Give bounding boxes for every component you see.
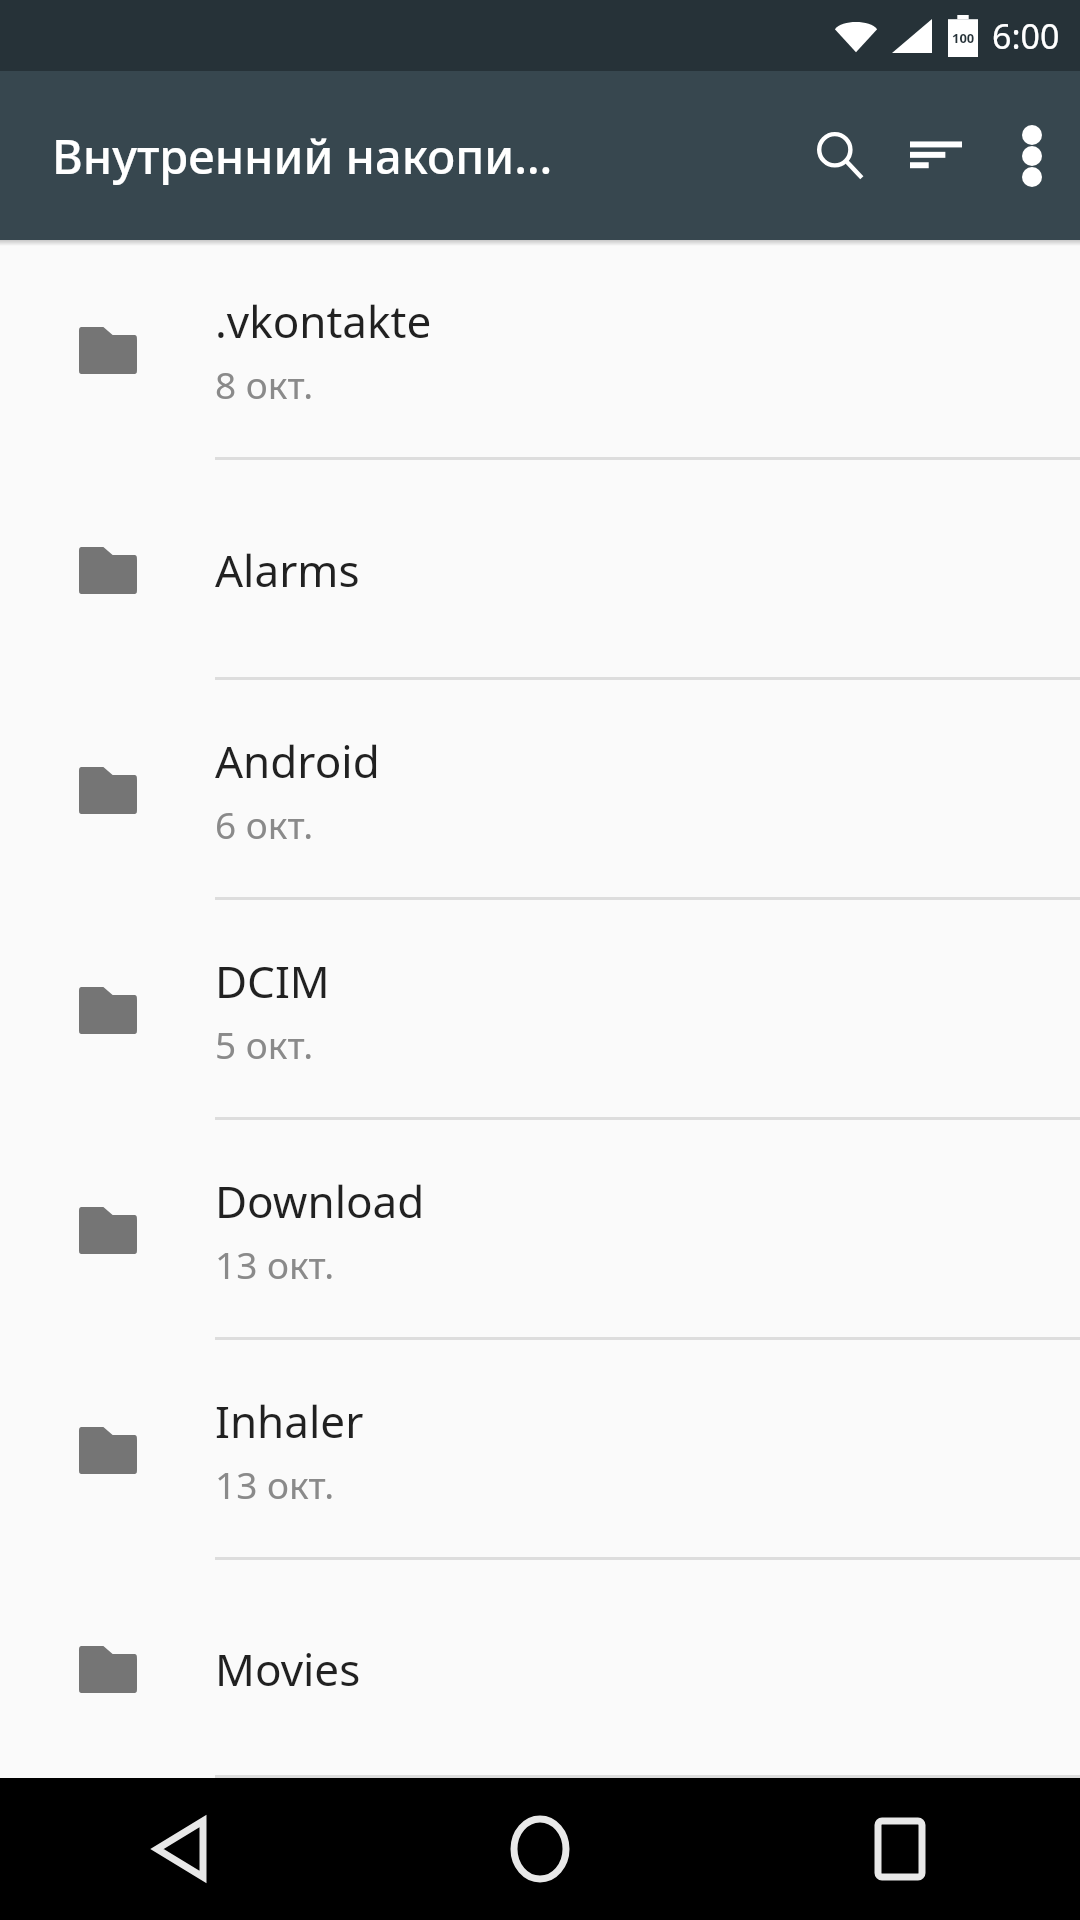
button[interactable]: Download bbox=[0, 1120, 1080, 1340]
staticText: 5 окт. bbox=[215, 1019, 314, 1069]
button[interactable]: Back bbox=[0, 1778, 360, 1920]
staticText: 13 окт. bbox=[215, 1239, 335, 1289]
button[interactable]: Sort bbox=[888, 108, 984, 204]
staticText: DCIM bbox=[215, 951, 330, 1011]
staticText: Inhaler bbox=[215, 1391, 364, 1451]
staticText: Movies bbox=[215, 1639, 361, 1699]
staticText: Download bbox=[215, 1171, 425, 1231]
staticText: 100 bbox=[952, 29, 975, 47]
button[interactable]: Movies bbox=[0, 1560, 1080, 1778]
staticText: Android bbox=[215, 731, 380, 791]
staticText: 13 окт. bbox=[215, 1459, 335, 1509]
staticText: 6 окт. bbox=[215, 799, 314, 849]
button[interactable]: More options bbox=[984, 108, 1080, 204]
staticText: .vkontakte bbox=[215, 291, 432, 351]
button[interactable]: Recent apps bbox=[720, 1778, 1080, 1920]
button[interactable]: Home bbox=[360, 1778, 720, 1920]
button[interactable]: Android bbox=[0, 680, 1080, 900]
staticText: Внутренний накопи… bbox=[52, 124, 612, 188]
button[interactable]: Search bbox=[792, 108, 888, 204]
button[interactable]: Inhaler bbox=[0, 1340, 1080, 1560]
button[interactable]: .vkontakte bbox=[0, 240, 1080, 460]
staticText: Alarms bbox=[215, 540, 360, 600]
button[interactable]: Alarms bbox=[0, 460, 1080, 680]
staticText: 8 окт. bbox=[215, 359, 314, 409]
staticText: 6:00 bbox=[992, 13, 1060, 59]
button[interactable]: DCIM bbox=[0, 900, 1080, 1120]
